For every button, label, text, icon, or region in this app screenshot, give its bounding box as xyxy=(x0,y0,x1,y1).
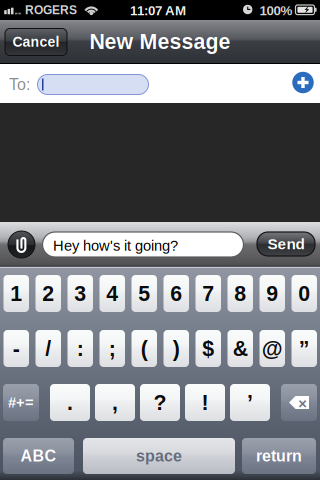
button[interactable]: return xyxy=(242,438,316,474)
button[interactable]: 7 xyxy=(195,275,221,312)
staticText: ROGERS xyxy=(25,3,77,17)
button[interactable]: ’ xyxy=(230,384,270,421)
button[interactable]: 3 xyxy=(67,275,93,312)
staticText: 1 xyxy=(10,282,22,305)
staticText: 9 xyxy=(266,282,278,305)
staticText: ” xyxy=(299,337,310,360)
staticText: New Message xyxy=(89,30,230,53)
button[interactable]: Delete xyxy=(281,384,317,421)
button[interactable]: - xyxy=(3,330,29,367)
button[interactable]: & xyxy=(227,330,253,367)
button[interactable]: 1 xyxy=(3,275,29,312)
staticText: 0 xyxy=(298,282,310,305)
staticText: / xyxy=(45,337,51,360)
staticText: ’ xyxy=(247,391,253,414)
button[interactable]: ” xyxy=(291,330,317,367)
staticText: ! xyxy=(201,391,208,414)
button[interactable]: ? xyxy=(140,384,180,421)
button[interactable]: space xyxy=(83,438,235,474)
button[interactable]: / xyxy=(35,330,61,367)
staticText: , xyxy=(112,391,118,414)
staticText: 11:07 AM xyxy=(130,3,186,18)
button[interactable]: Add contact xyxy=(291,70,315,94)
staticText: . xyxy=(67,391,73,414)
staticText: 8 xyxy=(234,282,246,305)
button[interactable]: Send xyxy=(257,232,315,256)
staticText: 6 xyxy=(170,282,182,305)
staticText: Send xyxy=(267,235,304,252)
staticText: × xyxy=(298,395,307,412)
button[interactable]: 4 xyxy=(99,275,125,312)
staticText: Cancel xyxy=(12,34,59,50)
staticText: ( xyxy=(141,337,148,360)
button[interactable]: 6 xyxy=(163,275,189,312)
staticText: ? xyxy=(153,391,166,414)
staticText: @ xyxy=(262,337,283,360)
staticText: Hey how's it going? xyxy=(53,237,178,254)
button[interactable]: , xyxy=(95,384,135,421)
button[interactable]: @ xyxy=(259,330,285,367)
staticText: 100% xyxy=(259,3,292,18)
staticText: 7 xyxy=(202,282,214,305)
button[interactable]: #+= xyxy=(3,384,39,421)
staticText: - xyxy=(13,337,20,360)
staticText: ) xyxy=(173,337,180,360)
staticText: : xyxy=(77,337,84,360)
button[interactable]: $ xyxy=(195,330,221,367)
button[interactable]: 2 xyxy=(35,275,61,312)
button[interactable]: . xyxy=(50,384,90,421)
staticText: $ xyxy=(202,337,214,360)
staticText: ; xyxy=(109,337,116,360)
button[interactable]: 5 xyxy=(131,275,157,312)
button[interactable]: ; xyxy=(99,330,125,367)
staticText: 5 xyxy=(138,282,150,305)
button[interactable]: Attach xyxy=(8,231,35,258)
button[interactable]: ( xyxy=(131,330,157,367)
button[interactable]: ) xyxy=(163,330,189,367)
button[interactable]: 8 xyxy=(227,275,253,312)
staticText: #+= xyxy=(8,394,34,411)
staticText: space xyxy=(136,447,182,465)
staticText: ABC xyxy=(20,447,56,465)
staticText: & xyxy=(233,337,248,360)
button[interactable]: ! xyxy=(185,384,225,421)
button[interactable]: 9 xyxy=(259,275,285,312)
staticText: To: xyxy=(9,75,30,93)
button[interactable]: Cancel xyxy=(5,28,67,55)
staticText: return xyxy=(256,447,302,465)
staticText: 2 xyxy=(42,282,54,305)
button[interactable]: 0 xyxy=(291,275,317,312)
button[interactable]: : xyxy=(67,330,93,367)
staticText: 3 xyxy=(74,282,86,305)
staticText: 4 xyxy=(106,282,118,305)
button[interactable]: ABC xyxy=(3,438,74,474)
